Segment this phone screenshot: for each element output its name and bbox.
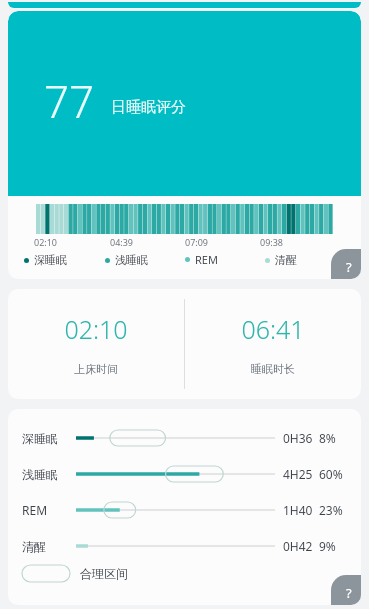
- button[interactable]: 深睡眠: [8, 427, 361, 449]
- staticText: ?: [346, 584, 352, 602]
- staticText: 04:39: [110, 236, 185, 248]
- button[interactable]: 清醒: [265, 253, 345, 267]
- staticText: 9%: [319, 538, 336, 554]
- staticText: ?: [346, 258, 352, 276]
- staticText: 0H36: [283, 430, 313, 446]
- button[interactable]: REM: [8, 499, 361, 521]
- staticText: 浅睡眠: [115, 253, 148, 267]
- staticText: REM: [22, 502, 48, 518]
- staticText: 0H42: [283, 538, 313, 554]
- staticText: 06:41: [241, 312, 305, 346]
- staticText: 07:09: [185, 236, 260, 248]
- button[interactable]: REM: [185, 252, 265, 267]
- button[interactable]: 清醒: [8, 535, 361, 557]
- button[interactable]: 77: [8, 11, 361, 196]
- staticText: 8%: [319, 430, 336, 446]
- button[interactable]: Help: [331, 575, 361, 605]
- button[interactable]: 06:41: [185, 289, 361, 399]
- staticText: 清醒: [275, 253, 297, 267]
- staticText: 日睡眠评分: [111, 98, 186, 117]
- staticText: 上床时间: [74, 362, 118, 376]
- staticText: 深睡眠: [34, 253, 67, 267]
- button[interactable]: 浅睡眠: [105, 253, 185, 267]
- staticText: 清醒: [22, 539, 46, 554]
- staticText: 浅睡眠: [22, 467, 58, 482]
- staticText: 1H40: [283, 502, 313, 518]
- staticText: 09:38: [260, 236, 335, 248]
- staticText: 23%: [319, 502, 343, 518]
- staticText: 60%: [319, 466, 343, 482]
- staticText: 77: [44, 71, 95, 131]
- staticText: 深睡眠: [22, 431, 58, 446]
- staticText: 02:10: [64, 312, 128, 346]
- button[interactable]: 02:10: [8, 289, 184, 399]
- staticText: 02:10: [34, 236, 110, 248]
- staticText: 合理区间: [80, 566, 128, 581]
- staticText: 睡眠时长: [251, 362, 295, 376]
- staticText: REM: [195, 252, 218, 267]
- button[interactable]: 深睡眠: [24, 253, 105, 267]
- button[interactable]: Help: [331, 249, 361, 279]
- button[interactable]: 浅睡眠: [8, 463, 361, 485]
- staticText: 4H25: [283, 466, 313, 482]
